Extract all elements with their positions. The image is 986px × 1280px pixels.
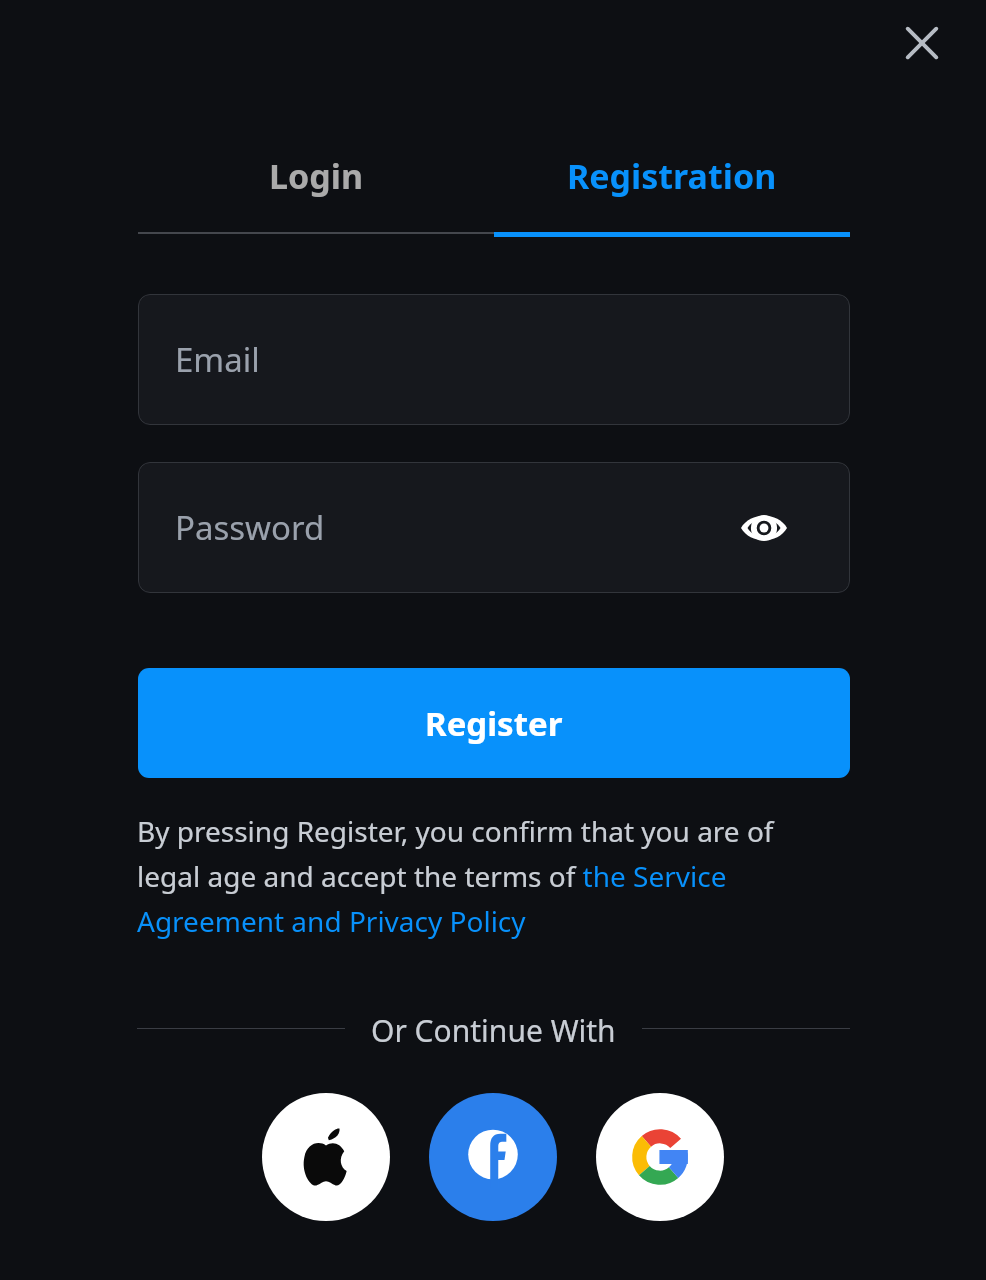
- button[interactable]: Show password: [736, 500, 792, 556]
- staticText: Email: [175, 337, 260, 382]
- button[interactable]: Close: [888, 9, 956, 77]
- button[interactable]: Login: [138, 140, 494, 234]
- button[interactable]: By pressing Register, you confirm that y…: [137, 812, 797, 941]
- staticText: Or Continue With: [371, 1010, 616, 1046]
- button[interactable]: Registration: [494, 140, 850, 237]
- button[interactable]: Sign in with Facebook: [429, 1093, 557, 1221]
- button[interactable]: Password: [138, 462, 850, 593]
- button[interactable]: Sign in with Apple: [262, 1093, 390, 1221]
- button[interactable]: Sign in with Google: [596, 1093, 724, 1221]
- button[interactable]: Email: [138, 294, 850, 425]
- button[interactable]: Register: [138, 668, 850, 778]
- staticText: Password: [175, 505, 325, 550]
- staticText: Login: [269, 153, 364, 199]
- staticText: By pressing Register, you confirm that y…: [137, 812, 797, 941]
- staticText: Register: [425, 701, 563, 746]
- staticText: Registration: [567, 153, 777, 199]
